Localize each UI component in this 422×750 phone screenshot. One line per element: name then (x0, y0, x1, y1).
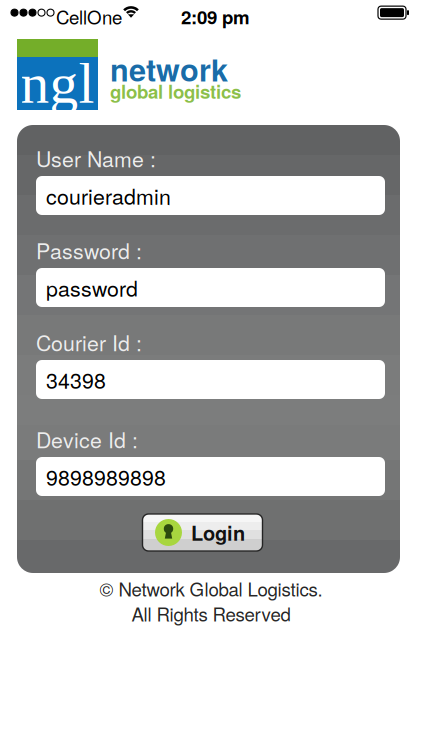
staticText: 9898989898 (46, 461, 166, 492)
staticText: Courier Id : (36, 327, 142, 357)
staticText: 34398 (46, 364, 106, 395)
staticText: All Rights Reserved (131, 600, 290, 627)
staticText: courieradmin (46, 180, 171, 211)
staticText: 2:09 pm (181, 3, 250, 30)
staticText: password (46, 272, 138, 303)
staticText: User Name : (36, 143, 156, 173)
staticText: CellOne (56, 3, 122, 30)
staticText: network (110, 47, 228, 91)
staticText: Password : (36, 235, 142, 265)
staticText: global logistics (110, 78, 241, 104)
staticText: ngl (20, 52, 94, 115)
staticText: © Network Global Logistics. (99, 575, 322, 602)
staticText: Login (191, 518, 245, 547)
button[interactable]: Login (142, 514, 262, 551)
staticText: Device Id : (36, 424, 138, 454)
